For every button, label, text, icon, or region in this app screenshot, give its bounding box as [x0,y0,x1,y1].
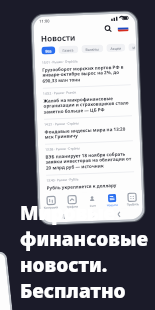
staticText: Грузооборот морских портов РФ в январе-о… [42,63,131,85]
staticText: Фондовые индексы мира на 13:20 мск Гринв… [44,125,133,141]
staticText: новости. [20,252,108,278]
staticText: Рубль укрепляется к доллару [46,182,117,191]
button[interactable]: Акции [106,43,125,52]
staticText: Бесплатно [20,278,126,304]
button[interactable]: 13:58 · Рынки · Страны [38,141,141,175]
button[interactable]: Recents [60,212,69,221]
button[interactable]: Инде [128,43,136,51]
staticText: Новости [106,203,118,207]
staticText: Газета [62,47,74,53]
staticText: 13:58 · Рынки · Страны [45,146,80,152]
button[interactable]: Новости [102,191,122,210]
button[interactable]: Графики [61,192,83,211]
button[interactable]: Все [41,46,55,55]
button[interactable]: Профиль [122,190,142,209]
staticText: Жалоб на микрофинансовые организации и с… [43,94,132,116]
staticText: Валюты [85,46,99,52]
staticText: Акции [110,46,121,51]
staticText: ВЭБ планирует 18 ноября собрать заявки и… [45,150,134,172]
staticText: 13:40 · Рынки · Рубль [46,177,79,183]
staticText: Счет [89,204,96,208]
button[interactable]: Back [115,210,124,219]
button[interactable]: Валюты [81,44,103,53]
button[interactable]: 15:01 · Рынки · Отрасль [35,54,138,88]
staticText: Новости [41,31,76,44]
button[interactable]: Котировки [40,193,62,212]
staticText: 15:01 · Рынки · Отрасль [42,59,78,65]
staticText: 11:00 [39,18,50,24]
staticText: Мировые [20,200,116,226]
button[interactable]: 13:40 · Рынки · Рубль [39,172,142,194]
button[interactable]: Газета [58,45,78,54]
button[interactable]: Счет [82,191,102,210]
staticText: 14:21 · Рынки · Страны [44,121,79,127]
staticText: финансовые [20,226,148,252]
staticText: Профиль [126,202,139,207]
staticText: Все [45,48,51,54]
staticText: 14:52 · Рынки · Рынок [43,90,77,96]
button[interactable]: 14:52 · Рынки · Рынок [36,85,139,119]
button[interactable]: 14:21 · Рынки · Страны [37,116,140,144]
staticText: Котировки [43,205,58,210]
button[interactable]: Search [103,24,113,33]
staticText: Графики [66,204,78,209]
button[interactable]: Language [117,24,129,32]
